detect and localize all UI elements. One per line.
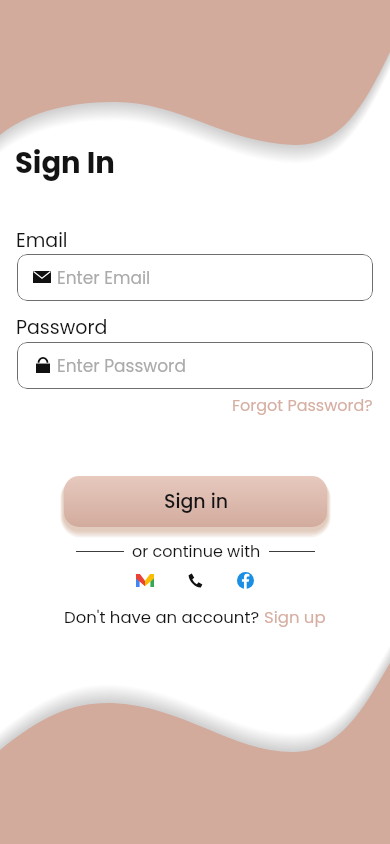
staticText: Don't have an account? [64,606,264,629]
staticText: Email [16,227,68,254]
button[interactable]: Sign up [264,606,326,629]
button[interactable]: Sign in with Facebook [225,565,265,595]
staticText: or continue with [132,540,261,562]
staticText: Sign in [164,488,228,515]
button[interactable]: Enter Email [17,254,373,301]
staticText: Password [16,314,108,341]
button[interactable]: Forgot Password? [232,394,373,416]
staticText: Sign In [15,143,115,184]
button[interactable]: Sign in [64,476,327,527]
staticText: Enter Password [57,354,186,378]
button[interactable]: Sign in with phone [175,565,215,595]
button[interactable]: Sign in with Gmail [125,565,165,595]
button[interactable]: Enter Password [17,342,373,389]
staticText: Enter Email [57,266,151,290]
